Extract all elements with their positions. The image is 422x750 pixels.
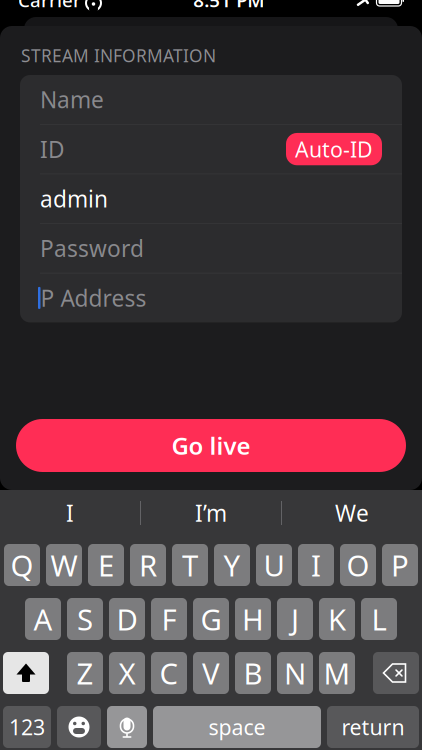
button[interactable]: K	[319, 598, 355, 640]
staticText: space	[208, 713, 265, 741]
staticText: L	[371, 599, 386, 638]
staticText: ID	[40, 134, 65, 164]
button[interactable]: X	[109, 652, 145, 694]
staticText	[370, 0, 376, 15]
button[interactable]: Z	[67, 652, 103, 694]
button[interactable]: I	[298, 544, 334, 586]
staticText: R	[139, 545, 157, 584]
staticText: Z	[76, 653, 93, 692]
staticText: E	[98, 545, 114, 584]
staticText: N	[284, 653, 306, 692]
button[interactable]: L	[361, 598, 397, 640]
button[interactable]: A	[25, 598, 61, 640]
button[interactable]: 123	[3, 706, 51, 748]
staticText: X	[118, 653, 135, 692]
button[interactable]: Delete	[373, 652, 419, 694]
button[interactable]: Auto-ID	[286, 133, 382, 165]
staticText: H	[242, 599, 264, 638]
staticText: I	[311, 545, 321, 584]
button[interactable]: We	[282, 490, 422, 536]
button[interactable]: H	[235, 598, 271, 640]
staticText: B	[243, 653, 262, 692]
staticText: 123	[9, 713, 45, 741]
staticText: G	[200, 599, 221, 638]
staticText: K	[328, 599, 346, 638]
button[interactable]: S	[67, 598, 103, 640]
button[interactable]: C	[151, 652, 187, 694]
staticText: Auto-ID	[295, 135, 373, 163]
staticText: return	[341, 713, 404, 741]
staticText: P	[391, 545, 409, 584]
button[interactable]: U	[256, 544, 292, 586]
button[interactable]: R	[130, 544, 166, 586]
button[interactable]: return	[327, 706, 419, 748]
button[interactable]: G	[193, 598, 229, 640]
staticText: O	[346, 545, 369, 584]
staticText: S	[77, 599, 93, 638]
button[interactable]: D	[109, 598, 145, 640]
button[interactable]: Emoji	[57, 706, 101, 748]
button[interactable]: Go live	[16, 419, 406, 472]
button[interactable]: M	[319, 652, 355, 694]
staticText: Go live	[171, 430, 250, 461]
staticText: M	[323, 653, 350, 692]
button[interactable]: B	[235, 652, 271, 694]
staticText: We	[335, 498, 369, 528]
staticText: U	[263, 545, 284, 584]
staticText: F	[161, 599, 176, 638]
button[interactable]: I’m	[141, 490, 281, 536]
staticText: Q	[10, 545, 33, 584]
staticText: I	[66, 498, 74, 528]
staticText: Y	[223, 545, 240, 584]
staticText: C	[159, 653, 178, 692]
button[interactable]: O	[340, 544, 376, 586]
staticText	[80, 0, 86, 15]
staticText: Carrier	[18, 0, 81, 12]
button[interactable]: I	[0, 490, 140, 536]
button[interactable]: J	[277, 598, 313, 640]
staticText: V	[202, 653, 220, 692]
staticText: I’m	[195, 498, 227, 528]
staticText: T	[182, 545, 198, 584]
staticText: STREAM INFORMATION	[21, 44, 216, 67]
button[interactable]: W	[46, 544, 82, 586]
button[interactable]: Y	[214, 544, 250, 586]
button[interactable]: V	[193, 652, 229, 694]
button[interactable]: Dictation	[107, 706, 147, 748]
button[interactable]: N	[277, 652, 313, 694]
button[interactable]: Q	[4, 544, 40, 586]
button[interactable]: space	[153, 706, 321, 748]
button[interactable]: F	[151, 598, 187, 640]
staticText: 8:51 PM	[193, 0, 264, 12]
staticText: D	[116, 599, 137, 638]
button[interactable]: E	[88, 544, 124, 586]
button[interactable]: Shift	[3, 652, 49, 694]
staticText: J	[291, 599, 299, 638]
staticText: Name	[40, 84, 104, 115]
staticText: W	[50, 545, 77, 584]
staticText: Password	[40, 233, 144, 263]
staticText: P Address	[40, 283, 146, 313]
button[interactable]: P	[382, 544, 418, 586]
staticText: A	[33, 599, 52, 638]
button[interactable]: T	[172, 544, 208, 586]
staticText: admin	[40, 184, 108, 214]
